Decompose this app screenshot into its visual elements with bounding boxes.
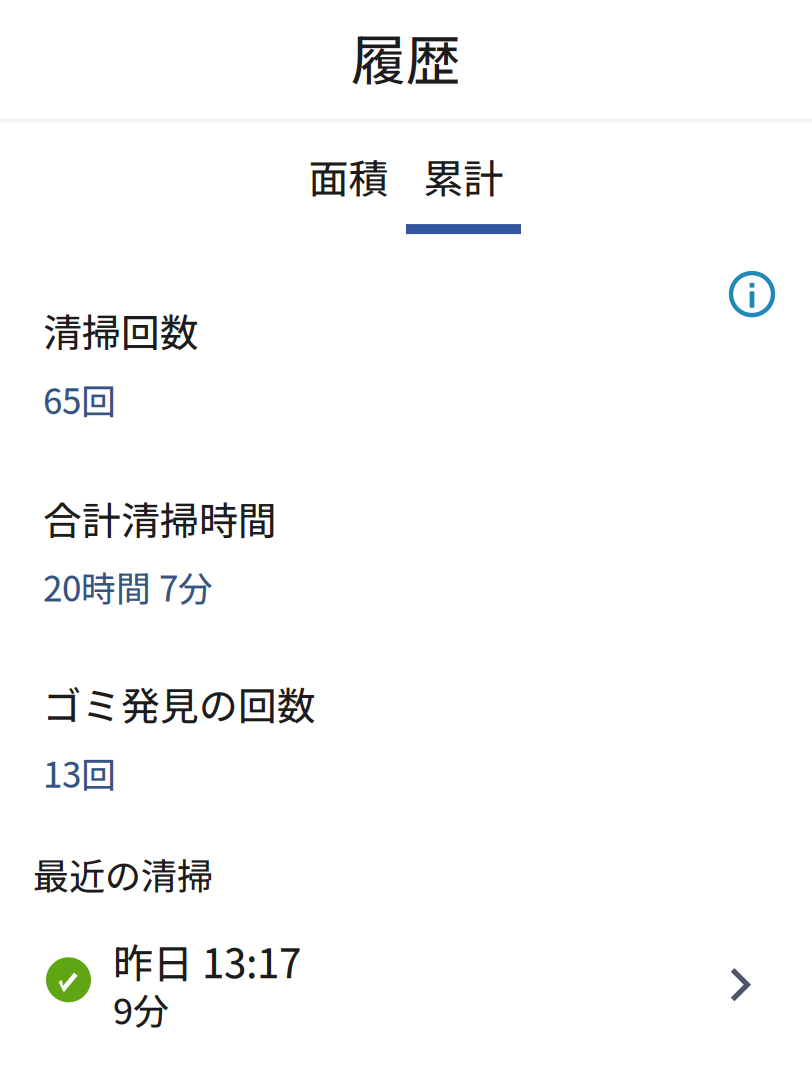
staticText: 面積 — [308, 147, 388, 205]
staticText: 昨日 13:17 — [113, 932, 301, 990]
button[interactable]: 詳細情報 — [728, 270, 776, 318]
button[interactable]: 昨日 13:17 — [0, 932, 812, 1042]
staticText: ゴミ発見の回数 — [43, 675, 316, 731]
staticText: 最近の清掃 — [33, 848, 213, 900]
staticText: 清掃回数 — [43, 302, 199, 358]
staticText: 累計 — [423, 147, 503, 205]
staticText: 履歴 — [351, 17, 461, 96]
staticText: 13回 — [43, 747, 116, 798]
staticText: 20時間 7分 — [43, 561, 213, 611]
staticText: 9分 — [113, 983, 169, 1035]
button[interactable]: 面積 — [291, 147, 406, 234]
staticText: 65回 — [43, 374, 116, 424]
staticText: 合計清掃時間 — [43, 490, 277, 546]
button[interactable]: 累計 — [406, 147, 521, 234]
